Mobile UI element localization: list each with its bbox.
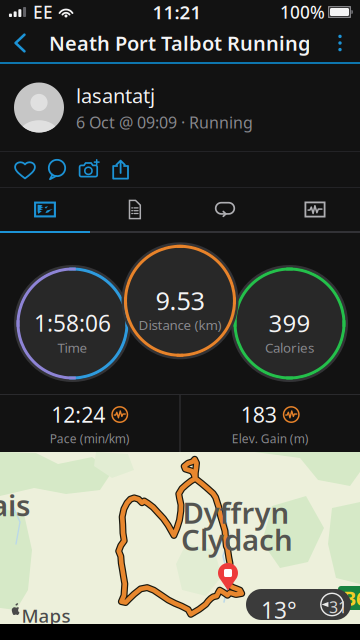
staticText: 11:21 (152, 0, 201, 24)
staticText: Distance (km) (138, 316, 221, 334)
button[interactable]: Back (0, 24, 40, 62)
staticText: 6 Oct @ 09:09 · Running (76, 112, 253, 133)
button[interactable]: More options (320, 24, 360, 62)
staticText: 13° (261, 595, 297, 625)
staticText: Time (57, 339, 87, 356)
staticText: 1:58:06 (34, 308, 111, 338)
staticText: B6 (343, 585, 360, 611)
staticText: Dyffryn (182, 493, 289, 532)
staticText: 183 (241, 400, 277, 429)
button[interactable]: lasantatj (0, 64, 360, 151)
staticText: 12:24 (51, 400, 105, 429)
staticText: Elev. Gain (m) (232, 431, 309, 447)
staticText: 399 (268, 307, 310, 339)
staticText: Maps (21, 603, 70, 628)
staticText: lasantatj (76, 82, 155, 109)
button[interactable]: Share (105, 152, 137, 187)
staticText: 31 (329, 596, 347, 618)
staticText: Neath Port Talbot Running (49, 30, 311, 56)
button[interactable]: Map (0, 188, 90, 231)
staticText: EE (33, 0, 53, 23)
button[interactable]: Add photo (73, 152, 105, 187)
button[interactable]: Charts (270, 188, 360, 231)
button[interactable]: Details (90, 188, 180, 231)
staticText: ais (0, 485, 30, 524)
button[interactable]: Comment (41, 152, 73, 187)
button[interactable]: Laps (180, 188, 270, 231)
button[interactable]: Like (9, 152, 41, 187)
staticText: Calories (265, 339, 314, 356)
staticText: 100% (280, 0, 325, 23)
staticText: Clydach (181, 520, 293, 559)
staticText: 9.53 (155, 283, 204, 317)
staticText: Pace (min/km) (50, 431, 130, 447)
